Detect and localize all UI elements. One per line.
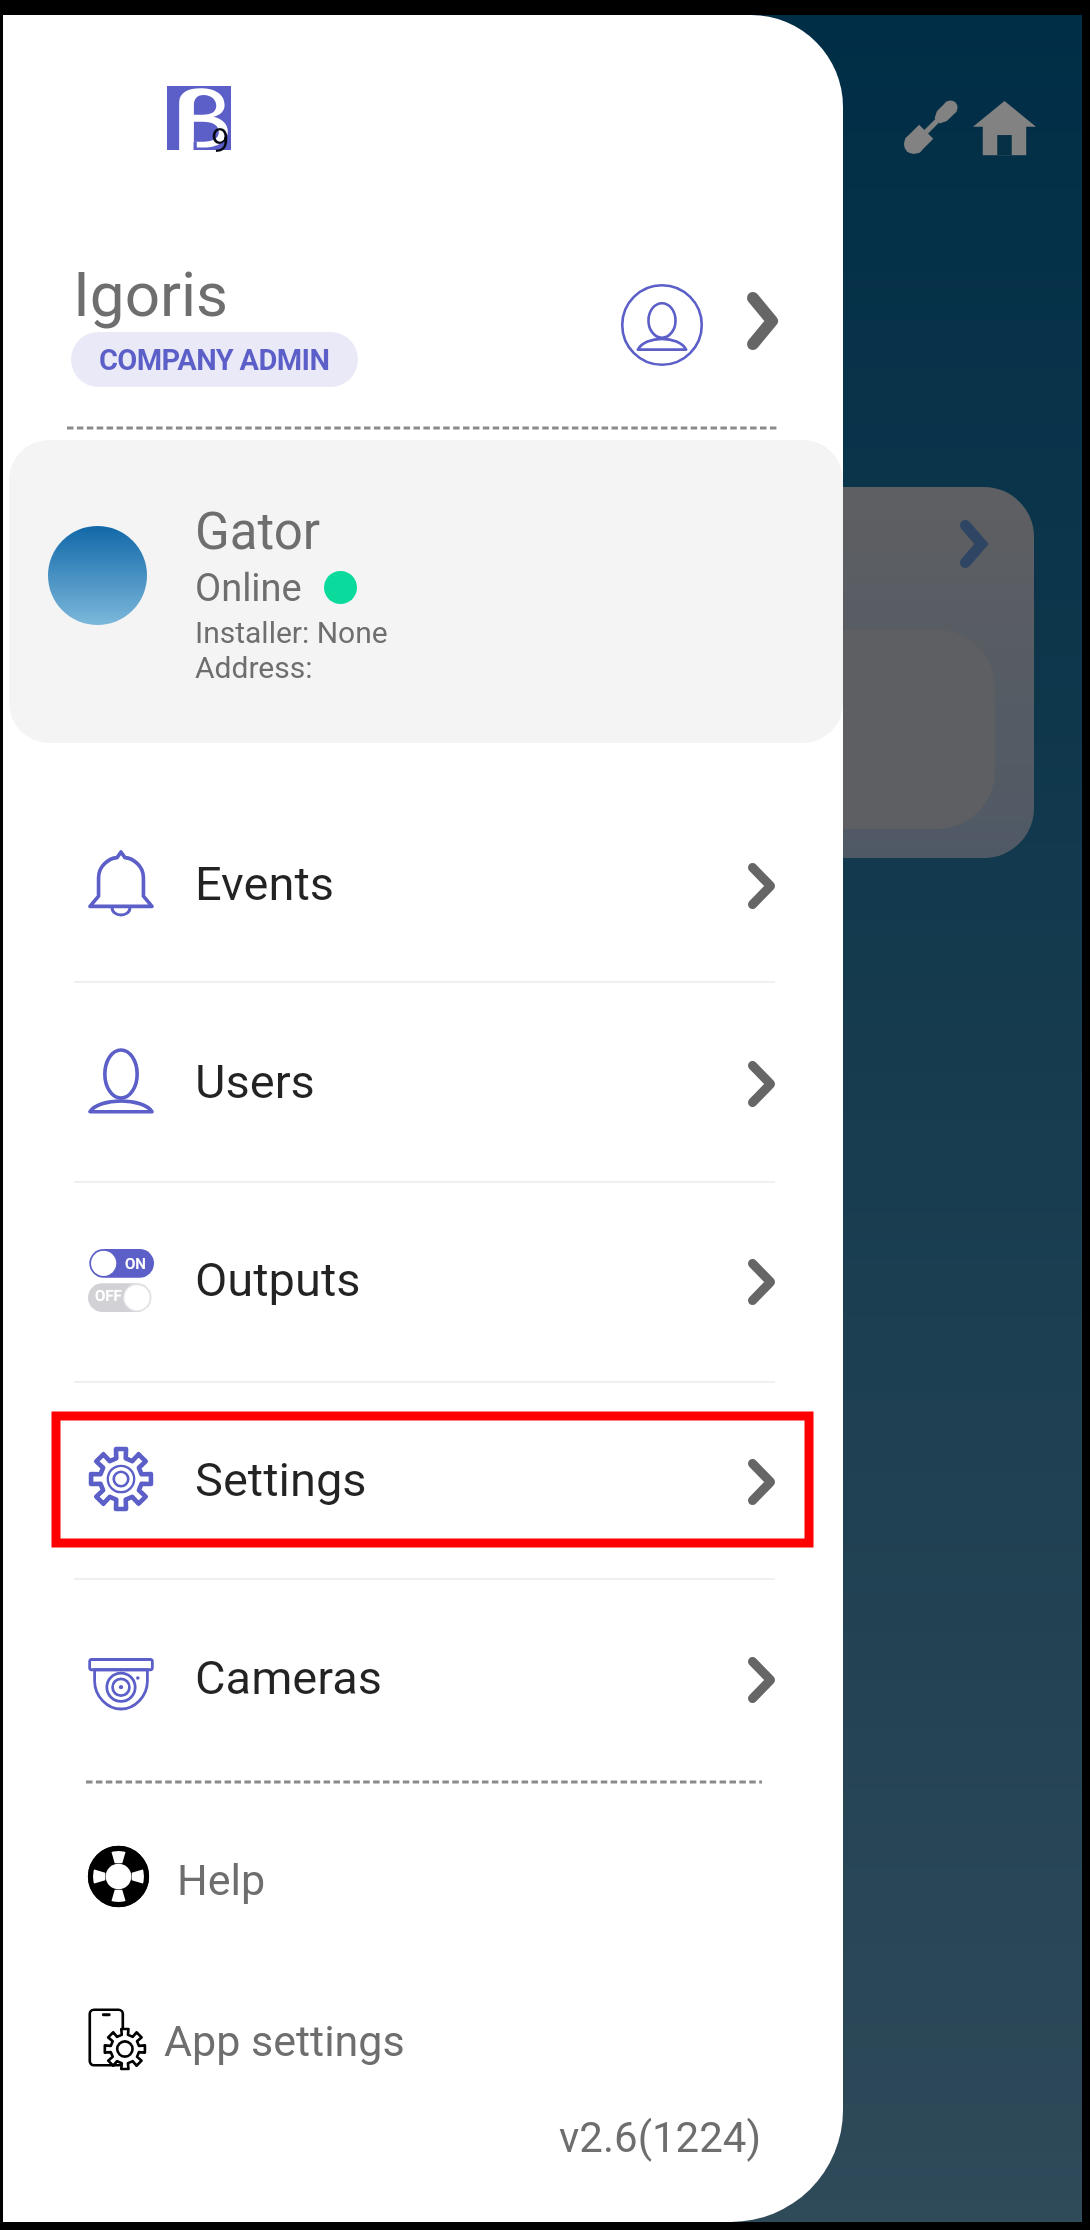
staticText: Igoris: [73, 258, 229, 331]
button[interactable]: Igoris: [3, 255, 843, 415]
button[interactable]: ON: [3, 1180, 843, 1378]
button[interactable]: Cameras: [3, 1578, 843, 1776]
staticText: 9: [211, 121, 230, 160]
staticText: Cameras: [195, 1650, 383, 1705]
staticText: Gator: [195, 502, 321, 562]
staticText: Users: [195, 1054, 315, 1109]
staticText: Events: [195, 856, 335, 911]
staticText: App settings: [164, 2016, 405, 2066]
staticText: Address:: [195, 650, 313, 685]
staticText: Outputs: [195, 1252, 361, 1307]
staticText: COMPANY ADMIN: [99, 343, 330, 377]
button[interactable]: Settings: [3, 1380, 843, 1578]
staticText: Online: [195, 566, 302, 611]
staticText: ON: [125, 1255, 146, 1273]
button[interactable]: Help: [3, 1821, 843, 1931]
staticText: v2.6(1224): [559, 2113, 762, 2162]
staticText: Settings: [195, 1452, 367, 1507]
button[interactable]: Users: [3, 982, 843, 1180]
button[interactable]: Service tools: [896, 88, 970, 162]
staticText: Help: [177, 1855, 266, 1905]
button[interactable]: Home: [973, 96, 1036, 159]
staticText: OFF: [95, 1287, 122, 1305]
staticText: Installer: None: [195, 615, 388, 650]
button[interactable]: Gator: [9, 440, 843, 743]
button[interactable]: App settings: [3, 1982, 843, 2092]
button[interactable]: [3, 487, 1034, 858]
button[interactable]: Events: [3, 784, 843, 982]
